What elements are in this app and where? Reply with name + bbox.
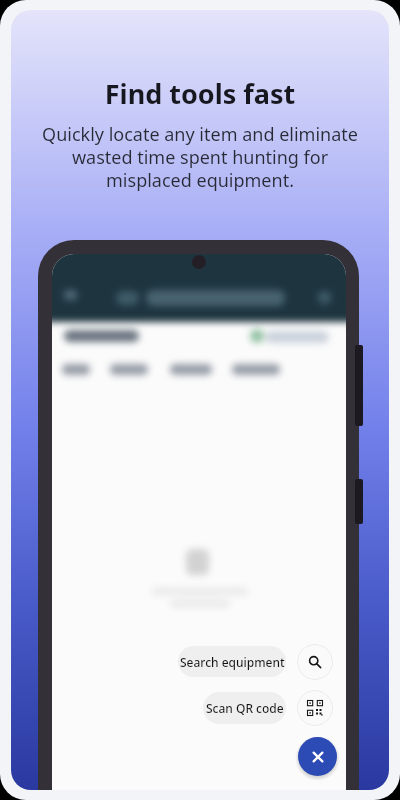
staticText: Find tools fast (11, 75, 389, 112)
button[interactable]: Scan QR code (203, 692, 286, 724)
button[interactable] (297, 690, 333, 726)
button[interactable]: Search equipment (178, 646, 286, 677)
button[interactable] (297, 644, 333, 680)
staticText: Quickly locate any item and eliminate wa… (11, 122, 389, 192)
button[interactable] (298, 737, 337, 776)
staticText: Search equipment (180, 654, 285, 670)
staticText: Scan QR code (206, 700, 284, 716)
